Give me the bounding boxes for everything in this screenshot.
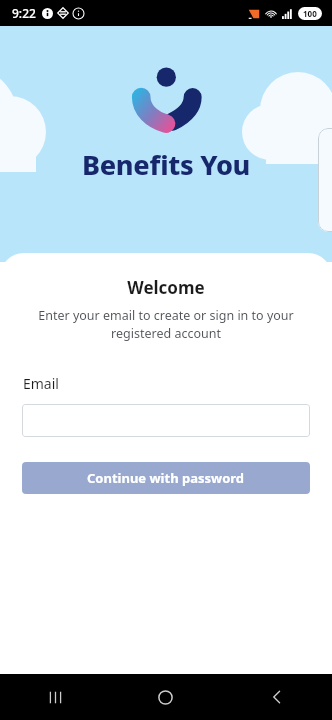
staticText: Welcome bbox=[0, 276, 332, 299]
button[interactable]: Continue with password bbox=[22, 462, 310, 494]
staticText: Continue with password bbox=[87, 469, 245, 487]
button[interactable]: Back bbox=[221, 674, 332, 720]
button[interactable] bbox=[22, 404, 310, 437]
button[interactable]: Home bbox=[110, 674, 221, 720]
staticText: Email bbox=[23, 374, 59, 393]
staticText: 9:22 bbox=[12, 5, 36, 21]
staticText: Enter your email to create or sign in to… bbox=[36, 307, 296, 342]
staticText: 100 bbox=[303, 8, 317, 19]
staticText: Benefits You bbox=[82, 146, 251, 183]
button[interactable]: Recent apps bbox=[0, 674, 110, 720]
